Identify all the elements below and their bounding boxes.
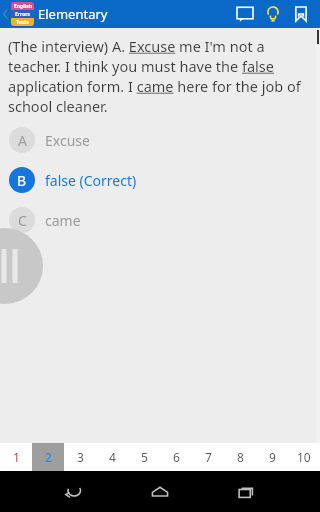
staticText: Errors <box>15 11 31 18</box>
button[interactable]: 1 <box>0 443 32 471</box>
staticText: (The interview) A. Excuse me I'm not a t… <box>8 36 310 116</box>
staticText: C <box>18 211 27 230</box>
button[interactable]: 6 <box>160 443 192 471</box>
staticText: 5 <box>141 449 148 465</box>
button[interactable]: 8 <box>224 443 256 471</box>
button[interactable]: A <box>0 120 320 160</box>
button[interactable]: Comments <box>231 0 259 28</box>
staticText: English <box>14 3 32 10</box>
button[interactable]: C <box>0 200 320 240</box>
staticText: 3 <box>77 449 84 465</box>
button[interactable]: 3 <box>64 443 96 471</box>
staticText: false (Correct) <box>45 171 137 190</box>
staticText: Elementary <box>38 5 108 23</box>
button[interactable]: Back <box>53 472 93 512</box>
button[interactable]: Recents <box>227 472 267 512</box>
button[interactable]: Home <box>140 472 180 512</box>
staticText: 10 <box>297 449 311 465</box>
staticText: Excuse <box>45 131 90 150</box>
staticText: 7 <box>205 449 212 465</box>
button[interactable]: 5 <box>128 443 160 471</box>
staticText: 9 <box>269 449 276 465</box>
button[interactable]: Fast scroll <box>0 228 42 304</box>
button[interactable]: 9 <box>256 443 288 471</box>
staticText: B <box>17 171 27 190</box>
button[interactable]: Bookmark <box>287 0 315 28</box>
button[interactable]: 7 <box>192 443 224 471</box>
staticText: A <box>18 131 27 150</box>
staticText: 2 <box>45 449 52 465</box>
button[interactable]: 2 <box>32 443 64 471</box>
button[interactable]: B <box>0 160 320 200</box>
staticText: 6 <box>173 449 180 465</box>
button[interactable]: Hint <box>259 0 287 28</box>
staticText: 4 <box>109 449 116 465</box>
button[interactable]: 4 <box>96 443 128 471</box>
staticText: 8 <box>237 449 244 465</box>
button[interactable]: 10 <box>288 443 320 471</box>
staticText: 1 <box>13 449 20 465</box>
staticText: Tests <box>16 19 29 26</box>
staticText: came <box>45 211 81 230</box>
